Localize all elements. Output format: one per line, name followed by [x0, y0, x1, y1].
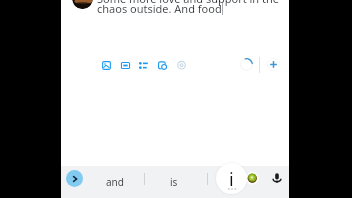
button[interactable]: Stickers	[245, 171, 259, 185]
button[interactable]: More suggestions	[66, 170, 83, 187]
button[interactable]: Profile picture	[72, 0, 93, 9]
button[interactable]: Add photo	[102, 61, 111, 70]
button[interactable]: is	[146, 166, 202, 198]
button[interactable]: Keyboard settings	[216, 163, 247, 194]
button[interactable]: Add poll	[139, 61, 148, 70]
staticText: is	[170, 175, 178, 189]
button[interactable]: Add GIF	[121, 61, 130, 70]
staticText: i	[229, 167, 234, 192]
button[interactable]: and	[85, 166, 144, 198]
staticText: and	[106, 175, 124, 189]
button[interactable]: Voice input	[271, 172, 283, 184]
staticText: Some more love and support in the chaos …	[97, 0, 279, 16]
button[interactable]: Add location	[177, 61, 186, 70]
button[interactable]: Character count	[240, 58, 253, 71]
button[interactable]: Open camera	[158, 61, 167, 70]
button[interactable]: Add another post	[267, 58, 280, 71]
